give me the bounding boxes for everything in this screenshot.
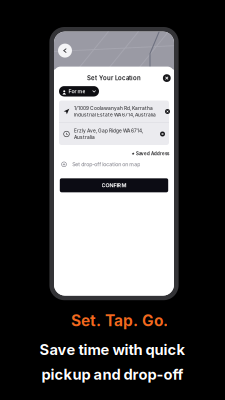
- button[interactable]: Back: [58, 44, 72, 58]
- staticText: Set drop-off location on map: [72, 161, 140, 167]
- staticText: 1/1009 Coolawanyah Rd, Karratha: [74, 105, 153, 111]
- staticText: Set Your Location: [87, 74, 141, 82]
- button[interactable]: Erzly Ave, Gap Ridge WA 6714,: [59, 123, 169, 145]
- staticText: For me: [68, 88, 85, 94]
- staticText: Save time with quick: [39, 341, 185, 359]
- staticText: pickup and drop-off: [41, 366, 183, 383]
- button[interactable]: 1/1009 Coolawanyah Rd, Karratha: [59, 100, 169, 122]
- button[interactable]: Set drop-off location on map: [54, 161, 174, 168]
- staticText: Erzly Ave, Gap Ridge WA 6714,: [74, 128, 143, 134]
- button[interactable]: Remove: [165, 109, 170, 114]
- staticText: Set. Tap. Go.: [71, 311, 168, 330]
- staticText: CONFIRM: [101, 182, 126, 189]
- button[interactable]: For me: [59, 86, 99, 96]
- button[interactable]: Remove: [160, 131, 165, 136]
- staticText: Industrial Estate WA 6714, Australia: [74, 112, 156, 118]
- button[interactable]: CONFIRM: [60, 178, 168, 192]
- staticText: Saved Address: [136, 151, 169, 156]
- button[interactable]: Close: [163, 74, 171, 82]
- staticText: Australia: [74, 134, 95, 140]
